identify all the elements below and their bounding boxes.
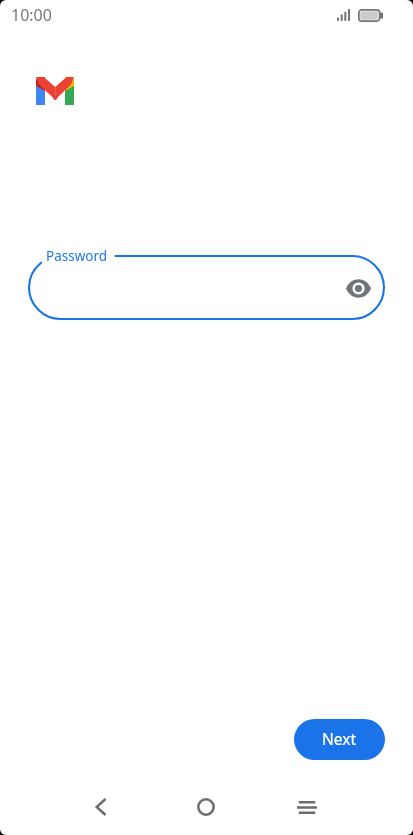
staticText: Next <box>322 728 357 749</box>
button[interactable]: Next <box>294 719 385 760</box>
button[interactable]: Show password <box>336 266 380 310</box>
button[interactable]: Back <box>73 779 129 835</box>
staticText: 10:00 <box>11 4 52 26</box>
button[interactable]: Home <box>178 779 234 835</box>
button[interactable]: Recent apps <box>279 779 335 835</box>
staticText: Password <box>46 247 108 265</box>
